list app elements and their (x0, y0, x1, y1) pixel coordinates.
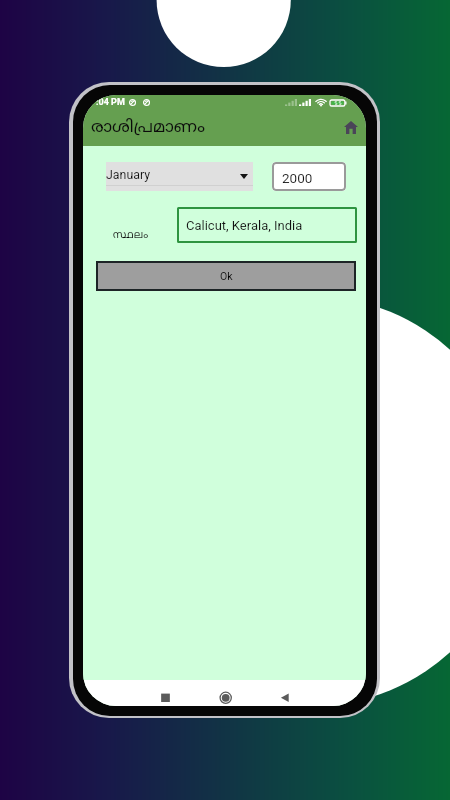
button[interactable]: Ok (96, 261, 356, 291)
staticText: :04 PM (96, 97, 125, 108)
button[interactable]: Home (340, 116, 362, 138)
button[interactable]: January (106, 162, 253, 191)
staticText: രാശിപ്രമാണം (91, 117, 205, 138)
staticText: സ്ഥലം (113, 228, 149, 242)
button[interactable]: Calicut, Kerala, India (177, 207, 357, 243)
staticText: 2000 (282, 170, 313, 186)
staticText: Ok (220, 270, 233, 282)
button[interactable]: 2000 (272, 162, 346, 191)
staticText: Calicut, Kerala, India (186, 218, 303, 233)
staticText: January (106, 167, 151, 182)
